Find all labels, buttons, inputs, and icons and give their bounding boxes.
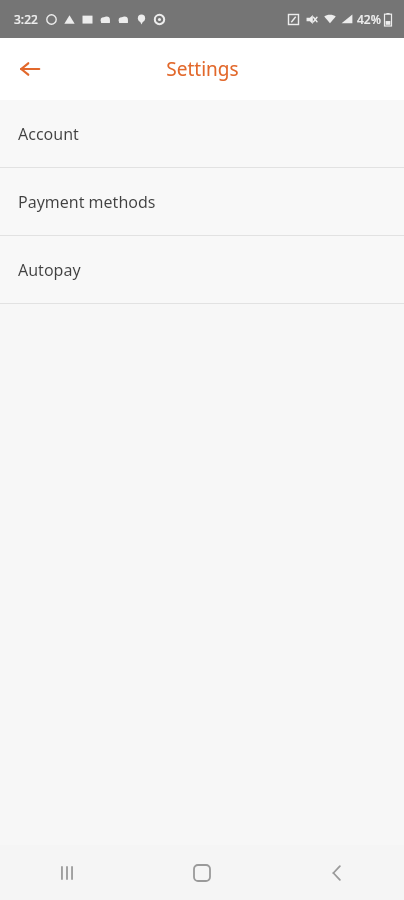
button[interactable]: Home [174,845,230,900]
staticText: Settings [166,56,239,82]
button[interactable]: Back [309,845,365,900]
button[interactable]: Recent apps [39,845,95,900]
button[interactable]: Back [6,45,54,93]
button[interactable]: Account [0,100,404,167]
button[interactable]: Autopay [0,236,404,303]
staticText: Account [18,123,79,145]
staticText: Autopay [18,259,81,281]
staticText: Payment methods [18,191,156,213]
button[interactable]: Payment methods [0,168,404,235]
staticText: 3:22 [14,11,38,27]
staticText: 42% [357,11,381,27]
